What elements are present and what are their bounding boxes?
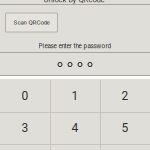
button[interactable]: 3 [0,112,50,144]
button[interactable]: Scan QRCode [5,13,57,32]
staticText: 2 [121,89,128,103]
staticText: Please enter the password [38,42,111,50]
button[interactable]: 4 [50,112,100,144]
button[interactable]: 7 [50,144,100,150]
staticText: 5 [121,121,128,135]
button[interactable]: 1 [50,80,100,112]
button[interactable]: 6 [0,144,50,150]
button[interactable]: 8 [100,144,150,150]
button[interactable]: 5 [100,112,150,144]
button[interactable]: 0 [0,80,50,112]
staticText: 1 [71,89,78,103]
staticText: Unlock by QRcode [43,0,104,4]
button[interactable]: 2 [100,80,150,112]
staticText: 0 [21,89,28,103]
staticText: Scan QRCode [13,19,49,26]
staticText: 3 [21,121,28,135]
staticText: 4 [71,121,78,135]
